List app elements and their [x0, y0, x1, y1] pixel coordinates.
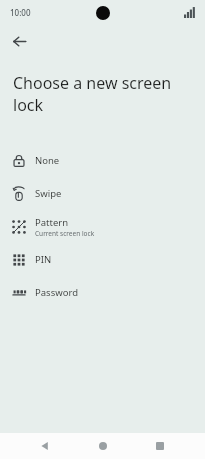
button[interactable]: Recent apps: [149, 435, 171, 457]
button[interactable]: None: [0, 144, 205, 177]
staticText: Current screen lock: [35, 229, 95, 238]
staticText: PIN: [35, 253, 52, 266]
other: Password: [11, 285, 27, 301]
button[interactable]: Pattern: [0, 210, 205, 243]
staticText: Pattern: [35, 216, 69, 229]
other: Pattern: [11, 219, 27, 235]
button[interactable]: Password: [0, 276, 205, 309]
button[interactable]: Home: [92, 435, 114, 457]
staticText: Password: [35, 286, 78, 299]
staticText: 10:00: [10, 7, 31, 18]
button[interactable]: PIN: [0, 243, 205, 276]
other: PIN: [11, 252, 27, 268]
staticText: None: [35, 154, 60, 167]
button[interactable]: Back: [34, 435, 56, 457]
staticText: Swipe: [35, 187, 62, 200]
other: Swipe: [11, 186, 27, 202]
button[interactable]: Swipe: [0, 177, 205, 210]
staticText: Choose a new screen lock: [13, 72, 185, 116]
other: None: [11, 153, 27, 169]
button[interactable]: Back: [4, 26, 34, 56]
